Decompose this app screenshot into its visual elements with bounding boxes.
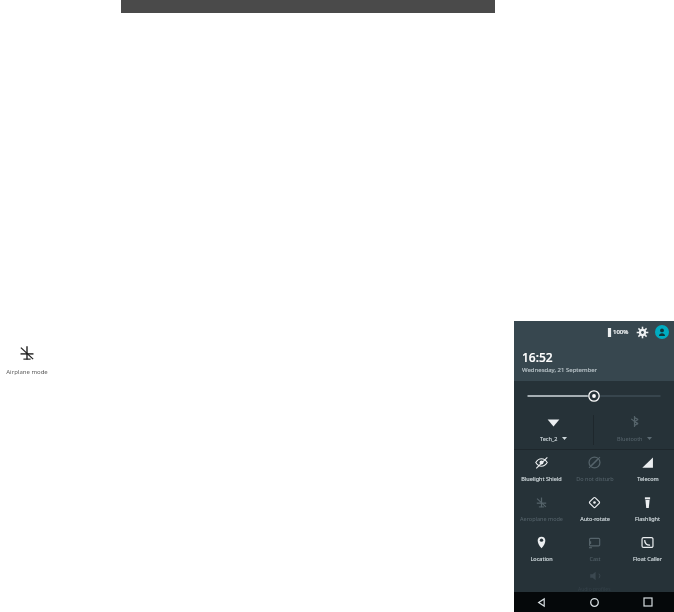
- button[interactable]: Home: [568, 592, 621, 612]
- button[interactable]: Do not disturb: [568, 450, 621, 490]
- button[interactable]: Recents: [621, 592, 674, 612]
- staticText: Tech_2: [540, 435, 558, 442]
- staticText: Audio profiles: [578, 586, 611, 592]
- button[interactable]: Location: [514, 530, 568, 570]
- button[interactable]: User: [655, 325, 669, 339]
- staticText: 100%: [613, 328, 629, 336]
- button[interactable]: Aeroplane mode: [514, 490, 568, 530]
- staticText: Location: [530, 555, 553, 562]
- button[interactable]: Telecom: [621, 450, 674, 490]
- staticText: Flashlight: [635, 515, 660, 522]
- button[interactable]: Flashlight: [621, 490, 674, 530]
- button[interactable]: Tech_2: [514, 411, 593, 449]
- staticText: Wednesday, 21 September: [522, 366, 598, 374]
- button[interactable]: Brightness: [514, 381, 674, 411]
- staticText: Bluetooth: [617, 435, 643, 442]
- staticText: Do not disturb: [576, 475, 614, 482]
- staticText: Float Caller: [633, 555, 662, 562]
- button[interactable]: Settings: [636, 326, 649, 339]
- button[interactable]: Bluetooth: [594, 411, 674, 449]
- staticText: 16:52: [522, 349, 553, 365]
- button[interactable]: Auto-rotate: [568, 490, 621, 530]
- button[interactable]: Audio profiles: [578, 570, 611, 592]
- staticText: Aeroplane mode: [520, 515, 563, 522]
- staticText: Airplane mode: [6, 368, 48, 376]
- staticText: Telecom: [637, 475, 659, 482]
- staticText: Cast: [589, 555, 601, 562]
- staticText: Auto-rotate: [580, 515, 610, 522]
- button[interactable]: Bluelight Shield: [514, 450, 568, 490]
- button[interactable]: Cast: [568, 530, 621, 570]
- button[interactable]: Airplane mode: [2, 344, 52, 376]
- staticText: Bluelight Shield: [521, 475, 562, 482]
- button[interactable]: Float Caller: [621, 530, 674, 570]
- button[interactable]: Back: [514, 592, 568, 612]
